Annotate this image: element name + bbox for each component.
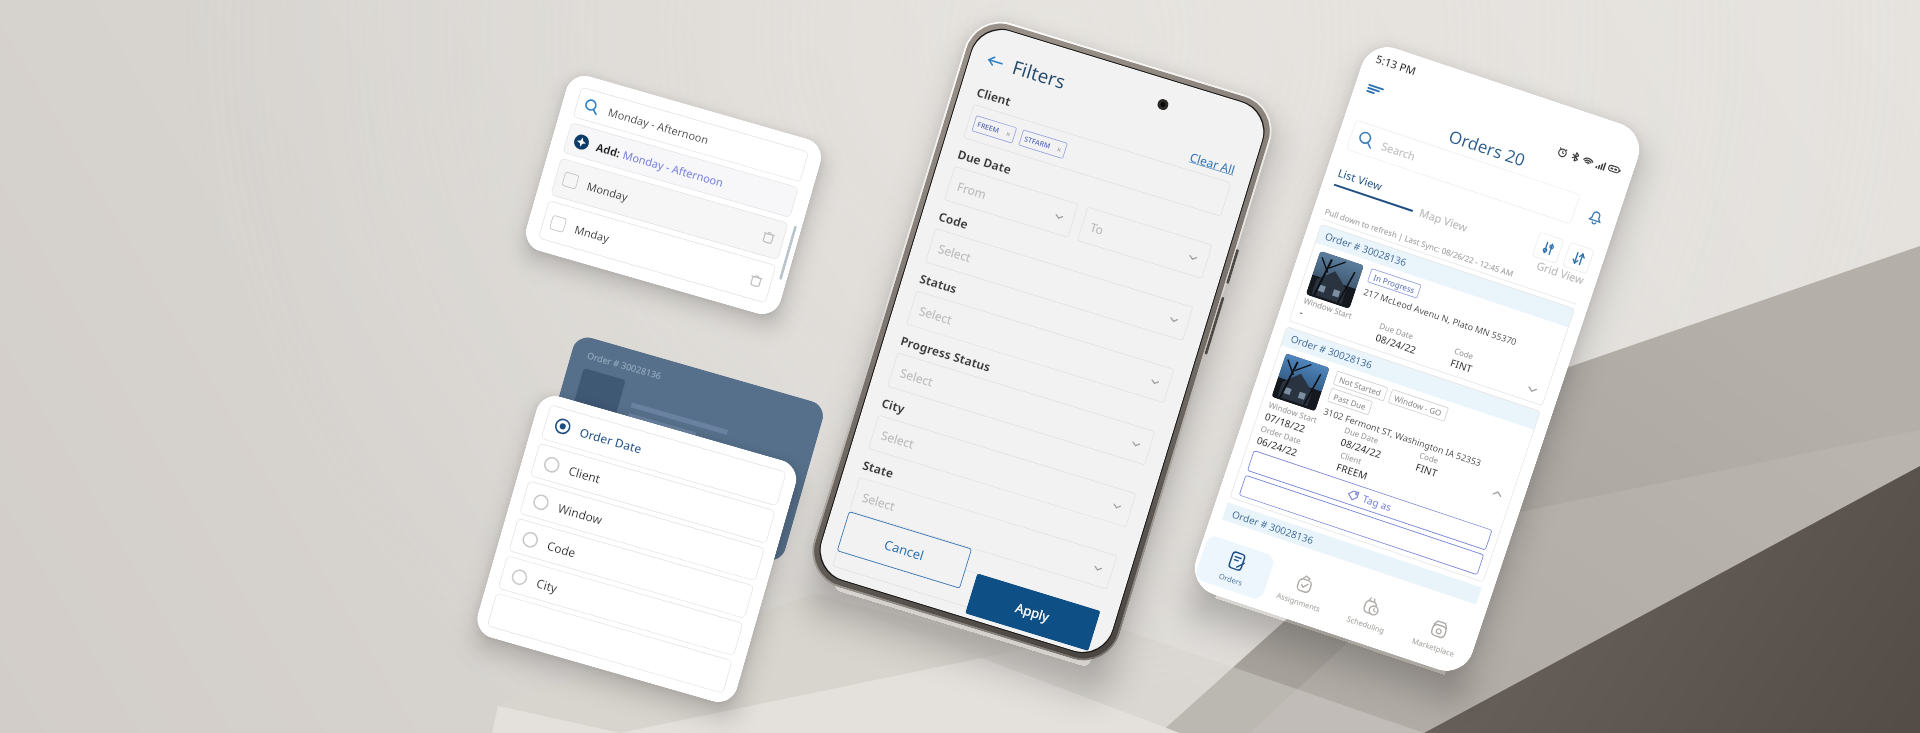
button[interactable]: Back bbox=[984, 51, 1006, 72]
button[interactable]: Select bbox=[849, 476, 1118, 590]
staticText: Scheduling bbox=[1345, 613, 1386, 635]
staticText: Pull down to refresh | Last Sync: 08/26/… bbox=[1324, 205, 1516, 279]
staticText: 08/24/22 bbox=[1339, 434, 1384, 461]
button[interactable]: From bbox=[944, 166, 1079, 238]
button[interactable]: Mnday bbox=[538, 200, 777, 304]
staticText: Window bbox=[556, 500, 605, 528]
staticText: Window Start bbox=[1302, 294, 1354, 321]
staticText: Past Due bbox=[1332, 391, 1368, 412]
staticText: Order # 30028136 bbox=[1230, 507, 1316, 547]
staticText: City bbox=[880, 394, 907, 417]
staticText: FREEM bbox=[1335, 459, 1369, 483]
button[interactable]: Tag as bbox=[1247, 450, 1493, 551]
button[interactable]: Client bbox=[530, 443, 776, 544]
staticText: Select bbox=[860, 489, 898, 514]
staticText: Client bbox=[1339, 449, 1363, 466]
button[interactable]: City bbox=[497, 555, 744, 656]
button[interactable]: Select bbox=[925, 228, 1194, 341]
staticText: Code bbox=[1453, 345, 1476, 362]
staticText: 06/24/22 bbox=[1255, 433, 1300, 460]
staticText: Map View bbox=[1417, 205, 1470, 235]
button[interactable]: Select bbox=[906, 290, 1175, 403]
staticText: × bbox=[1055, 143, 1063, 155]
staticText: 08/24/22 bbox=[1374, 330, 1419, 357]
button[interactable]: Add: bbox=[562, 122, 799, 218]
staticText: Marketplace bbox=[1411, 635, 1456, 659]
staticText: Add: bbox=[594, 139, 625, 161]
staticText: STFARM bbox=[1023, 134, 1051, 152]
staticText: Search bbox=[1380, 138, 1418, 163]
button[interactable]: Order Date bbox=[540, 404, 787, 506]
staticText: Order # 30028136 bbox=[586, 349, 663, 381]
staticText: Status bbox=[918, 270, 960, 297]
button[interactable]: Menu bbox=[1364, 78, 1387, 101]
button[interactable]: Orders bbox=[1194, 534, 1276, 601]
button[interactable]: Notifications bbox=[1584, 205, 1608, 229]
button[interactable]: Apply bbox=[965, 573, 1101, 651]
button[interactable]: Monday bbox=[550, 157, 789, 260]
button[interactable]: Select bbox=[887, 352, 1156, 466]
staticText: Due Date bbox=[956, 146, 1014, 177]
staticText: Tag as bbox=[1361, 491, 1394, 514]
staticText: × bbox=[1005, 128, 1013, 140]
staticText: Not Started bbox=[1338, 374, 1383, 398]
staticText: FREEM bbox=[976, 120, 1001, 136]
staticText: Window - GO bbox=[1393, 392, 1444, 418]
button[interactable]: To bbox=[1077, 206, 1213, 279]
button[interactable] bbox=[832, 532, 1101, 645]
staticText: FINT bbox=[1449, 355, 1475, 376]
button[interactable]: List View bbox=[1334, 165, 1426, 214]
staticText: Select bbox=[879, 427, 917, 452]
staticText: Monday - Afternoon bbox=[606, 104, 711, 147]
staticText: Order # 30028136 bbox=[1289, 331, 1375, 372]
staticText: 217 McLeod Avenu N, Plato MN 55370 bbox=[1362, 285, 1518, 347]
staticText: Select bbox=[898, 364, 936, 390]
staticText: 5:13 PM bbox=[1374, 51, 1419, 79]
staticText: Apply bbox=[1013, 598, 1052, 626]
button[interactable]: Filter bbox=[1532, 231, 1564, 264]
staticText: Monday - Afternoon bbox=[621, 147, 725, 190]
button[interactable]: Map View bbox=[1417, 193, 1510, 247]
staticText: Filters bbox=[1009, 54, 1069, 95]
button[interactable]: Sort bbox=[1562, 241, 1595, 274]
staticText: Select bbox=[936, 240, 974, 265]
staticText: Order Date bbox=[1259, 422, 1303, 446]
staticText: Code bbox=[1418, 449, 1441, 466]
staticText: State bbox=[861, 456, 896, 481]
staticText: To bbox=[1088, 219, 1106, 238]
staticText: Order Date bbox=[578, 424, 644, 457]
staticText: FINT bbox=[1414, 460, 1440, 480]
button[interactable]: Monday - Afternoon bbox=[572, 86, 809, 182]
staticText: Assignments bbox=[1275, 590, 1322, 614]
button[interactable]: Assignments bbox=[1261, 556, 1343, 624]
staticText: Mnday bbox=[573, 221, 611, 246]
button[interactable]: Scheduling bbox=[1328, 579, 1411, 646]
staticText: Code bbox=[545, 537, 578, 560]
staticText: Due Date bbox=[1378, 320, 1416, 342]
staticText: Cancel bbox=[882, 535, 927, 564]
button[interactable]: Marketplace bbox=[1396, 601, 1478, 669]
staticText: Client bbox=[975, 83, 1014, 109]
staticText: 3102 Fermont ST, Washington IA 52353 bbox=[1322, 404, 1483, 468]
button[interactable]: Select bbox=[868, 414, 1137, 528]
staticText: Progress Status bbox=[899, 332, 993, 375]
button[interactable]: Code bbox=[508, 517, 754, 619]
staticText: Client bbox=[567, 462, 603, 487]
staticText: Order # 30028136 bbox=[1323, 229, 1409, 269]
staticText: Select bbox=[917, 302, 955, 327]
button[interactable]: Search bbox=[1346, 119, 1581, 225]
staticText: - bbox=[1298, 305, 1306, 319]
button[interactable]: Clear All bbox=[1188, 149, 1238, 178]
staticText: Grid View bbox=[1535, 258, 1587, 288]
staticText: City bbox=[535, 575, 560, 596]
staticText: Due Date bbox=[1343, 424, 1381, 446]
button[interactable]: Cancel bbox=[837, 511, 972, 589]
button[interactable]: Window bbox=[519, 480, 765, 582]
staticText: 07/18/22 bbox=[1263, 409, 1308, 436]
staticText: In Progress bbox=[1372, 271, 1416, 295]
staticText: Window Start bbox=[1267, 399, 1319, 425]
staticText: Code bbox=[937, 208, 970, 232]
button[interactable]: Grid View bbox=[1498, 221, 1595, 288]
staticText: Monday bbox=[585, 178, 630, 204]
staticText: From bbox=[955, 178, 989, 202]
